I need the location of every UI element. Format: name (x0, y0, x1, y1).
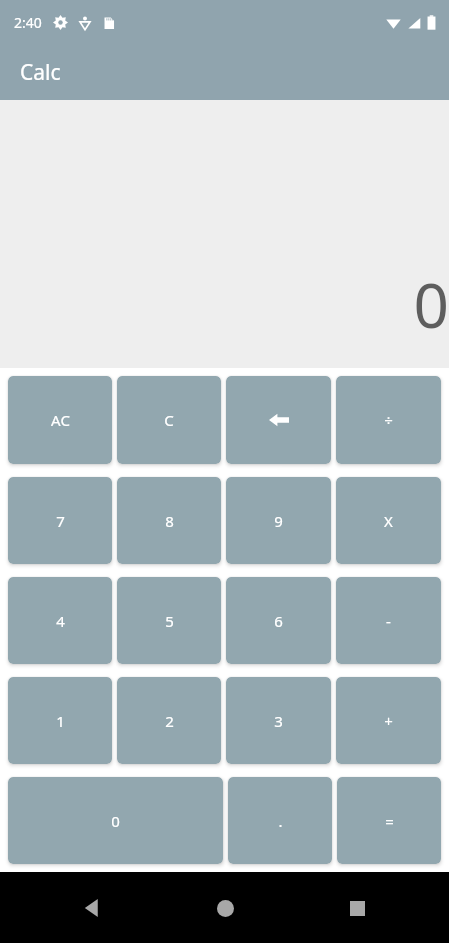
button[interactable]: Backspace (226, 376, 331, 464)
staticText: 2 (165, 711, 174, 731)
button[interactable]: Back (70, 886, 114, 930)
staticText: 5 (165, 611, 174, 631)
button[interactable]: ÷ (336, 376, 441, 464)
staticText: ÷ (384, 410, 393, 430)
button[interactable]: 4 (8, 577, 112, 664)
button[interactable]: Home (203, 886, 247, 930)
button[interactable]: + (336, 677, 441, 764)
staticText: 2:40 (14, 13, 42, 32)
button[interactable]: 6 (226, 577, 331, 664)
button[interactable]: 7 (8, 477, 112, 564)
button[interactable]: X (336, 477, 441, 564)
staticText: + (384, 711, 393, 731)
button[interactable]: 2 (117, 677, 221, 764)
button[interactable]: - (336, 577, 441, 664)
staticText: 9 (274, 511, 283, 531)
staticText: 4 (56, 611, 65, 631)
staticText: 6 (274, 611, 283, 631)
button[interactable]: AC (8, 376, 112, 464)
staticText: 1 (56, 711, 65, 731)
button[interactable]: 0 (8, 777, 223, 864)
staticText: 7 (56, 511, 65, 531)
button[interactable]: C (117, 376, 221, 464)
button[interactable]: 5 (117, 577, 221, 664)
button[interactable]: 1 (8, 677, 112, 764)
staticText: C (164, 410, 174, 430)
staticText: 8 (165, 511, 174, 531)
staticText: Calc (20, 58, 61, 87)
staticText: - (386, 611, 391, 631)
button[interactable]: 8 (117, 477, 221, 564)
staticText: 0 (111, 811, 120, 831)
staticText: . (278, 811, 283, 831)
staticText: = (385, 811, 394, 831)
staticText: 0 (413, 262, 449, 346)
button[interactable]: Recent apps (335, 886, 379, 930)
staticText: X (384, 511, 393, 531)
button[interactable]: . (228, 777, 332, 864)
staticText: 3 (274, 711, 283, 731)
staticText: AC (51, 410, 70, 430)
button[interactable]: 9 (226, 477, 331, 564)
button[interactable]: = (337, 777, 441, 864)
button[interactable]: 3 (226, 677, 331, 764)
